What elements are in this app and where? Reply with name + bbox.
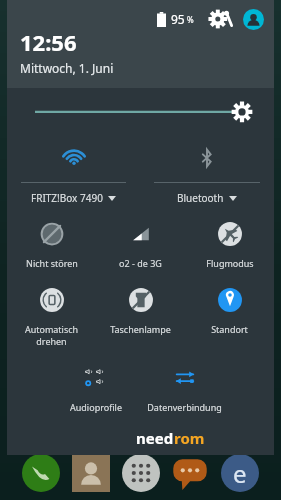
button[interactable]: Messages — [171, 454, 209, 492]
staticText: FRITZ!Box 7490 — [31, 191, 103, 205]
button[interactable]: Browser — [221, 454, 259, 492]
button[interactable]: User — [243, 9, 264, 30]
staticText: Mittwoch, 1. Juni — [20, 60, 114, 76]
staticText: Flugmodus — [206, 257, 254, 269]
staticText: Audioprofile — [70, 401, 122, 413]
button[interactable]: Brightness — [7, 89, 274, 133]
button[interactable]: Contacts — [72, 454, 110, 492]
button[interactable]: Phone — [22, 454, 60, 492]
button[interactable]: Flugmodus — [185, 221, 274, 269]
button[interactable]: o2 - de 3G — [96, 221, 185, 269]
button[interactable]: Settings — [207, 8, 237, 30]
staticText: % — [187, 14, 194, 25]
staticText: Datenverbindung — [147, 401, 222, 413]
staticText: e — [233, 457, 247, 490]
button[interactable]: Wi-Fi — [21, 145, 126, 205]
button[interactable]: Audioprofile — [51, 365, 140, 413]
staticText: Standort — [211, 323, 248, 335]
staticText: o2 - de 3G — [119, 257, 162, 269]
staticText: Taschenlampe — [110, 323, 171, 335]
staticText: Automatisch drehen — [9, 323, 94, 347]
button[interactable]: Nicht stören — [7, 221, 96, 269]
button[interactable]: Datenverbindung — [140, 365, 229, 413]
staticText: need — [136, 428, 174, 448]
button[interactable]: Apps — [122, 454, 160, 492]
button[interactable]: Automatisch drehen — [7, 287, 96, 347]
staticText: rom — [174, 428, 205, 448]
staticText: Bluetooth — [177, 191, 224, 205]
staticText: 12:56 — [20, 27, 77, 57]
button[interactable]: Bluetooth — [154, 145, 260, 205]
button[interactable]: Taschenlampe — [96, 287, 185, 335]
staticText: Nicht stören — [26, 257, 78, 269]
staticText: 95 — [171, 11, 185, 27]
button[interactable]: Standort — [185, 287, 274, 335]
